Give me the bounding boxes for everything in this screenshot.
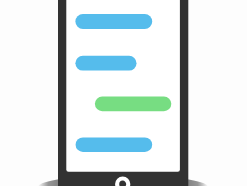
button[interactable]: Message 2	[75, 56, 136, 71]
button[interactable]: Reply message	[95, 97, 171, 112]
button[interactable]: Home	[115, 176, 131, 186]
button[interactable]: Message 3	[76, 137, 153, 152]
button[interactable]: Message 1	[75, 14, 152, 29]
